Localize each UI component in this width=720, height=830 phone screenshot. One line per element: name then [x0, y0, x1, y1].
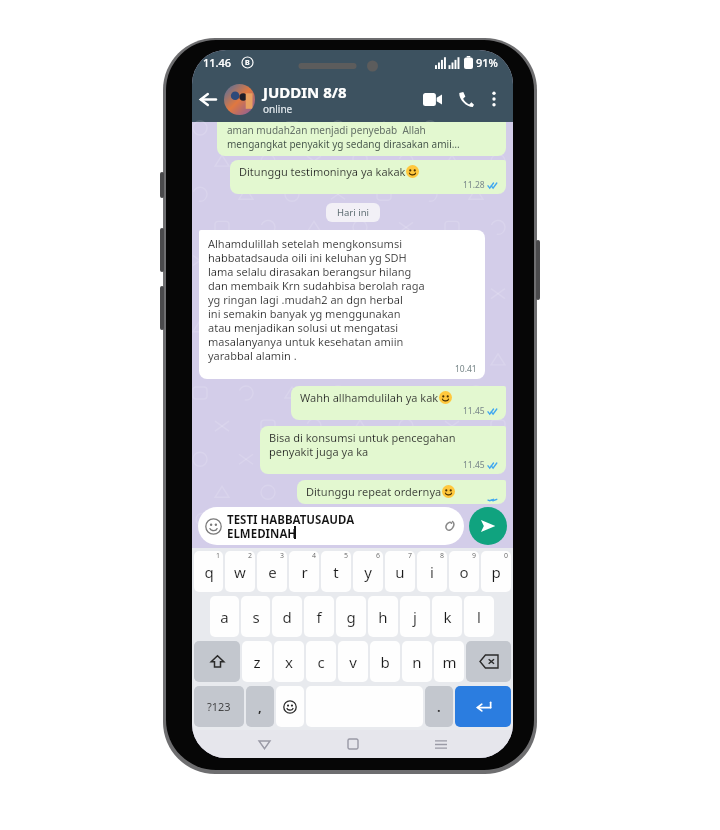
button[interactable]: ?123	[194, 686, 244, 727]
staticText: 9	[472, 551, 477, 561]
button[interactable]: x	[274, 641, 304, 682]
button[interactable]: f	[304, 596, 334, 637]
button[interactable]: q	[194, 551, 223, 592]
staticText: g	[346, 607, 356, 627]
button[interactable]: r	[289, 551, 319, 592]
button[interactable]: a	[210, 596, 239, 637]
staticText: s	[252, 607, 260, 627]
button[interactable]: Shift	[194, 641, 240, 682]
staticText: z	[253, 652, 261, 672]
staticText: Bisa di konsumsi untuk pencegahan penyak…	[269, 430, 456, 459]
staticText: Ditunggu repeat ordernya	[306, 484, 442, 499]
staticText: B	[245, 58, 250, 68]
button[interactable]: Ditunggu repeat ordernya	[297, 480, 506, 504]
staticText: Ditunggu testimoninya ya kakak	[239, 164, 406, 179]
button[interactable]: y	[353, 551, 383, 592]
button[interactable]: p	[481, 551, 511, 592]
staticText: c	[317, 652, 325, 672]
button[interactable]: z	[242, 641, 272, 682]
button[interactable]: u	[385, 551, 415, 592]
button[interactable]: h	[368, 596, 398, 637]
button[interactable]: Alhamdulillah setelah mengkonsumsi habba…	[199, 230, 485, 379]
button[interactable]: Send	[469, 507, 507, 545]
button[interactable]: t	[321, 551, 351, 592]
staticText: 8	[440, 551, 445, 561]
staticText: 11.45	[463, 405, 485, 417]
staticText: Wahh allhamdulilah ya kak	[300, 390, 439, 405]
staticText: x	[285, 652, 293, 672]
button[interactable]: i	[417, 551, 447, 592]
staticText: b	[380, 652, 390, 672]
staticText: 11.46	[203, 55, 232, 70]
button[interactable]: g	[336, 596, 366, 637]
button[interactable]: d	[272, 596, 302, 637]
button[interactable]: k	[432, 596, 462, 637]
staticText: o	[459, 562, 469, 582]
staticText: 11.45	[463, 459, 485, 471]
button[interactable]: Voice call	[451, 84, 481, 114]
staticText: v	[349, 652, 357, 672]
staticText: 4	[312, 551, 317, 561]
staticText: ,	[258, 698, 262, 716]
other: Emoji	[205, 518, 222, 535]
staticText: 7	[408, 551, 413, 561]
button[interactable]: .	[425, 686, 453, 727]
button[interactable]: Profile photo	[224, 84, 255, 115]
staticText: u	[395, 562, 405, 582]
staticText: e	[268, 562, 277, 582]
button[interactable]: c	[306, 641, 336, 682]
staticText: ?123	[207, 699, 231, 714]
staticText: .	[437, 698, 441, 716]
button[interactable]: v	[338, 641, 368, 682]
staticText: q	[204, 562, 214, 582]
button[interactable]: ,	[246, 686, 274, 727]
button[interactable]: j	[400, 596, 430, 637]
staticText: 2	[248, 551, 253, 561]
button[interactable]: Backspace	[466, 641, 511, 682]
button[interactable]: w	[225, 551, 255, 592]
button[interactable]: Bisa di konsumsi untuk pencegahan penyak…	[260, 426, 506, 474]
button[interactable]: More options	[481, 86, 507, 112]
button[interactable]: Recents	[424, 730, 458, 758]
button[interactable]: Enter	[455, 686, 511, 727]
button[interactable]: Back	[247, 730, 281, 758]
staticText: m	[442, 652, 457, 672]
button[interactable]: e	[257, 551, 287, 592]
button[interactable]: Back	[192, 84, 222, 114]
button[interactable]: Emoji keyboard	[276, 686, 304, 727]
button[interactable]: aman mudah2an menjadi penyebab Allah	[217, 122, 506, 156]
button[interactable]: JUDDIN 8/8	[263, 82, 417, 116]
staticText: online	[263, 102, 293, 116]
staticText: 0	[504, 551, 509, 561]
button[interactable]: l	[464, 596, 494, 637]
staticText: i	[430, 562, 434, 582]
staticText: aman mudah2an menjadi penyebab Allah	[227, 123, 426, 137]
staticText: n	[412, 652, 422, 672]
button[interactable]: s	[241, 596, 270, 637]
button[interactable]: b	[370, 641, 400, 682]
staticText: 11.28	[463, 179, 485, 191]
button[interactable]: Wahh allhamdulilah ya kak	[291, 386, 506, 420]
staticText: k	[443, 607, 452, 627]
staticText: w	[234, 562, 246, 582]
button[interactable]: Video call	[417, 84, 447, 114]
staticText: JUDDIN 8/8	[263, 82, 347, 102]
staticText: 91%	[476, 55, 498, 70]
other: Attach	[441, 518, 457, 534]
staticText: y	[364, 562, 372, 582]
staticText: j	[413, 607, 417, 627]
staticText: 1	[216, 551, 221, 561]
button[interactable]: m	[434, 641, 464, 682]
staticText: h	[378, 607, 388, 627]
button[interactable]: n	[402, 641, 432, 682]
button[interactable]: Emoji	[198, 507, 464, 545]
button[interactable]: Home	[336, 730, 370, 758]
staticText: r	[301, 562, 308, 582]
staticText: l	[477, 607, 481, 627]
staticText: 3	[280, 551, 285, 561]
staticText: 10.41	[455, 363, 477, 375]
staticText: f	[316, 607, 322, 627]
button[interactable]: Ditunggu testimoninya ya kakak	[230, 160, 506, 194]
button[interactable]: o	[449, 551, 479, 592]
